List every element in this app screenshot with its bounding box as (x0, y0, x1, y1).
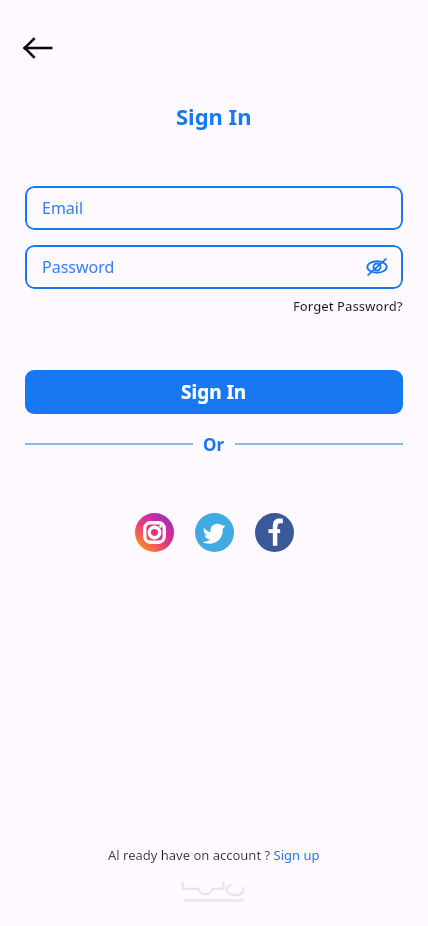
button[interactable]: Sign in with Instagram (135, 513, 174, 552)
staticText: Forget Password? (293, 297, 403, 315)
staticText: Or (203, 433, 225, 456)
button[interactable]: Al ready have on account ? Sign up (108, 846, 320, 864)
staticText: Al ready have on account ? Sign up (108, 846, 320, 864)
staticText: Password (42, 256, 115, 278)
staticText: Email (42, 197, 84, 219)
button[interactable]: Show password (359, 249, 395, 285)
button[interactable]: Sign in with Twitter (195, 513, 234, 552)
button[interactable]: Sign in with Facebook (255, 513, 294, 552)
button[interactable]: Forget Password? (293, 297, 403, 315)
button[interactable]: Sign In (25, 370, 403, 414)
button[interactable]: Email (25, 186, 403, 230)
button[interactable]: Password (25, 245, 403, 289)
button[interactable]: Back (16, 26, 60, 70)
staticText: Sign In (181, 379, 247, 405)
staticText: Sign In (176, 101, 252, 131)
